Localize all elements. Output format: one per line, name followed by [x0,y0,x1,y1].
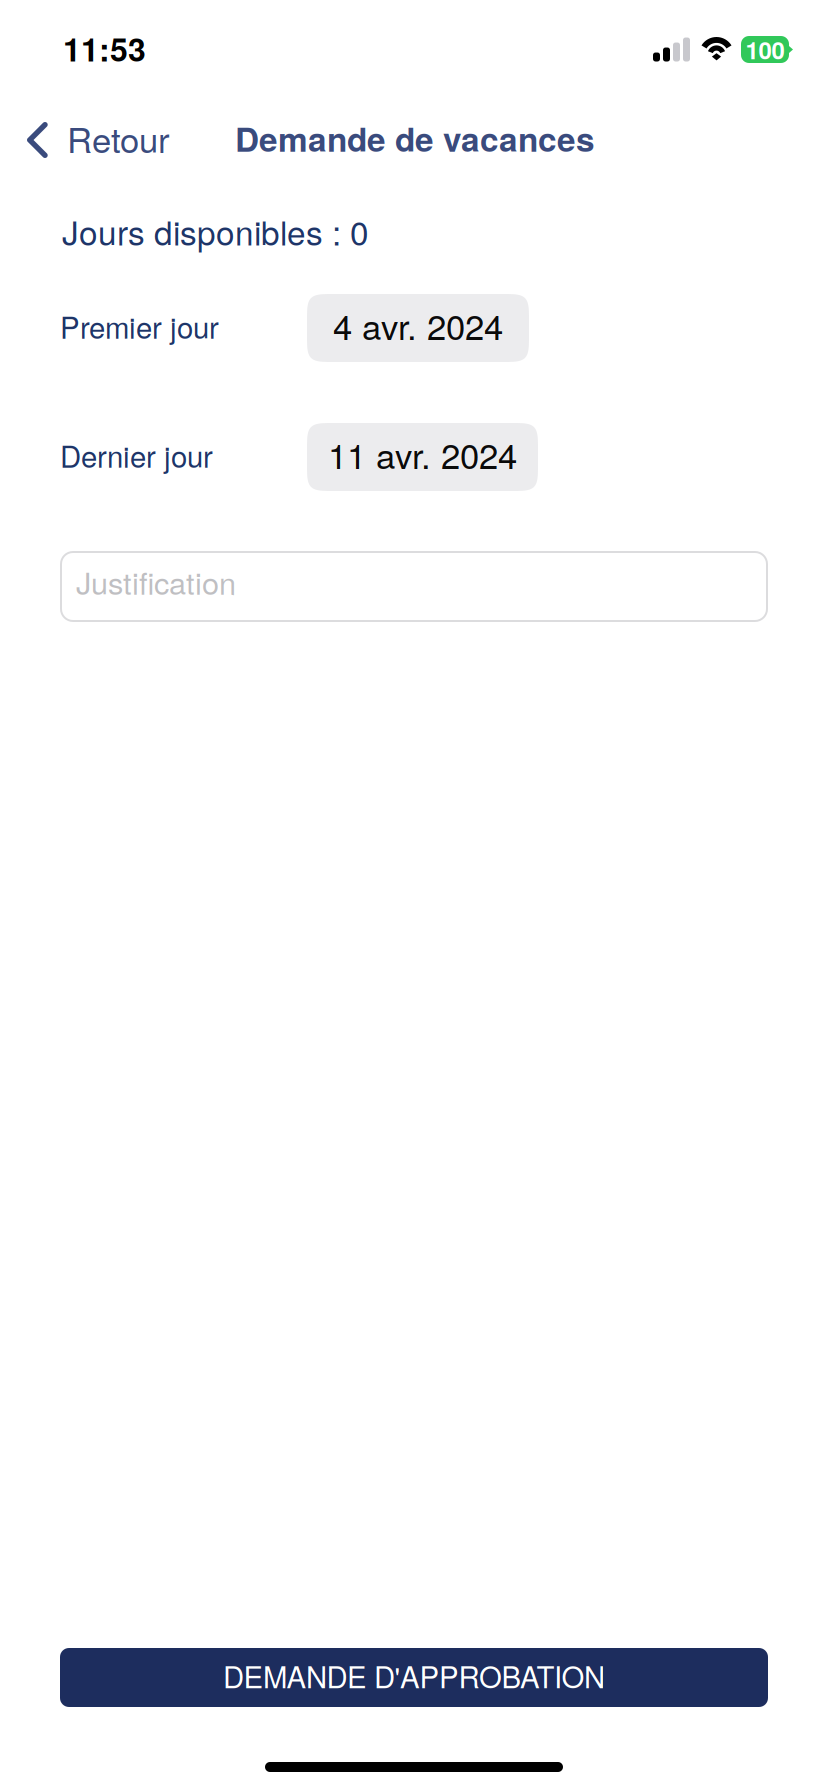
staticText: DEMANDE D'APPROBATION [223,1654,605,1696]
button[interactable]: 4 avr. 2024 [307,294,529,362]
button[interactable]: Justification [61,552,767,621]
staticText: Retour [67,113,170,163]
staticText: 100 [745,32,784,67]
staticText: Premier jour [60,305,219,347]
staticText: 11:53 [63,26,146,71]
button[interactable]: DEMANDE D'APPROBATION [60,1648,768,1707]
staticText: Justification [76,559,236,603]
staticText: 11 avr. 2024 [328,429,517,479]
staticText: Jours disponibles : 0 [62,207,369,255]
button[interactable]: 11 avr. 2024 [307,423,538,491]
staticText: Dernier jour [60,434,213,476]
button[interactable]: Retour [0,109,184,171]
staticText: 4 avr. 2024 [333,300,503,350]
staticText: Demande de vacances [235,114,595,162]
